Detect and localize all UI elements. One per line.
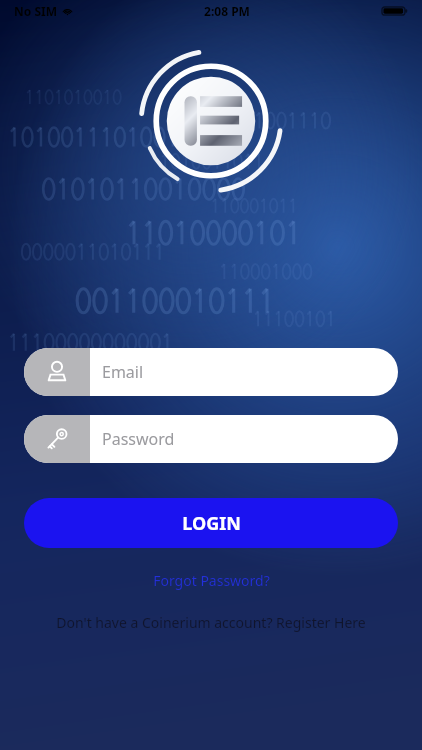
button[interactable]: Don't have a Coinerium account? Register… xyxy=(48,610,374,635)
staticText: Don't have a Coinerium account? Register… xyxy=(56,613,366,632)
button[interactable]: LOGIN xyxy=(24,498,398,548)
staticText: Forgot Password? xyxy=(153,571,270,590)
button[interactable]: Forgot Password? xyxy=(145,568,278,593)
other: Email xyxy=(44,359,70,385)
button[interactable]: Password xyxy=(24,415,398,463)
staticText: LOGIN xyxy=(182,511,241,536)
staticText: No SIM xyxy=(14,3,57,19)
button[interactable]: Email xyxy=(24,348,398,396)
staticText: Email xyxy=(102,361,144,383)
staticText: Password xyxy=(102,428,175,450)
staticText: 2:08 PM xyxy=(204,3,250,19)
other: Password xyxy=(44,426,70,452)
